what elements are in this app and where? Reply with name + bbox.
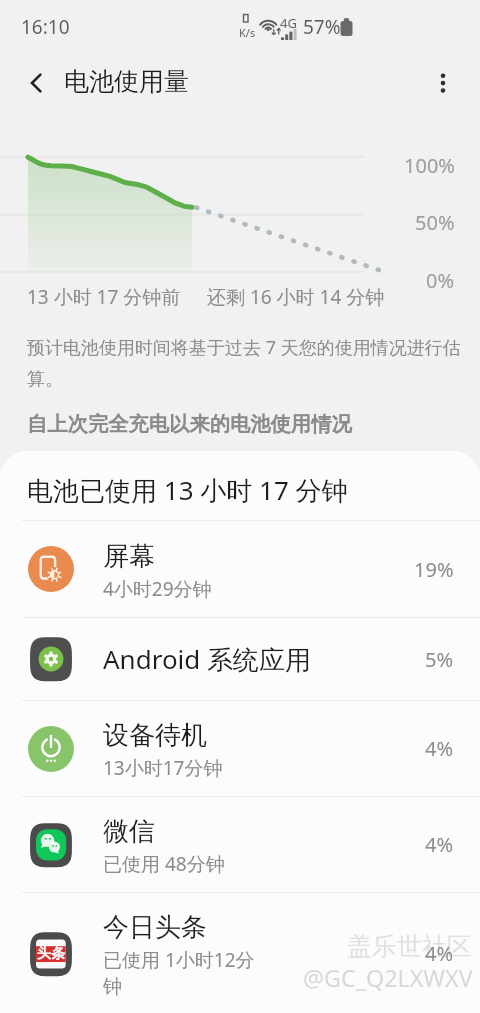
staticText: @GC_Q2LXWXV (303, 962, 473, 994)
staticText: K/s (239, 25, 256, 40)
staticText: 微信 (103, 815, 155, 848)
staticText: 100% (404, 152, 455, 179)
staticText: 4% (425, 940, 454, 967)
staticText: 今日头条 (103, 911, 207, 944)
staticText: 已使用 1小时12分钟 (103, 947, 263, 999)
button[interactable]: 屏幕 (0, 521, 480, 617)
staticText: 电池使用量 (64, 66, 189, 97)
button[interactable]: 头条 (0, 893, 480, 1013)
button[interactable]: More options (420, 60, 466, 106)
staticText: 预计电池使用时间将基于过去 7 天您的使用情况进行估算。 (27, 335, 465, 390)
staticText: 4% (425, 735, 454, 762)
staticText: 0% (426, 267, 455, 294)
staticText: 50% (415, 209, 455, 236)
staticText: 4小时29分钟 (103, 576, 212, 602)
staticText: 13小时17分钟 (103, 755, 223, 781)
staticText: 已使用 48分钟 (103, 851, 225, 877)
staticText: 电池已使用 13 小时 17 分钟 (27, 472, 348, 508)
staticText: 4% (425, 831, 454, 858)
button[interactable]: Android 系统应用 (0, 618, 480, 700)
staticText: Android 系统应用 (103, 641, 312, 677)
staticText: 4G (280, 14, 297, 32)
button[interactable]: Back (12, 59, 60, 107)
button[interactable]: 微信 (0, 797, 480, 892)
staticText: 19% (414, 556, 454, 583)
staticText: 盖乐世社区 (347, 931, 472, 962)
staticText: 设备待机 (103, 719, 207, 752)
staticText: 头条 (37, 945, 65, 963)
staticText: 13 小时 17 分钟前 (27, 284, 181, 310)
staticText: 屏幕 (103, 540, 155, 573)
staticText: 自上次完全充电以来的电池使用情况 (27, 411, 352, 437)
staticText: 57% (303, 14, 341, 40)
staticText: 5% (425, 646, 454, 673)
button[interactable]: 设备待机 (0, 701, 480, 796)
staticText: 还剩 16 小时 14 分钟 (207, 284, 385, 310)
staticText: 16:10 (21, 14, 70, 40)
